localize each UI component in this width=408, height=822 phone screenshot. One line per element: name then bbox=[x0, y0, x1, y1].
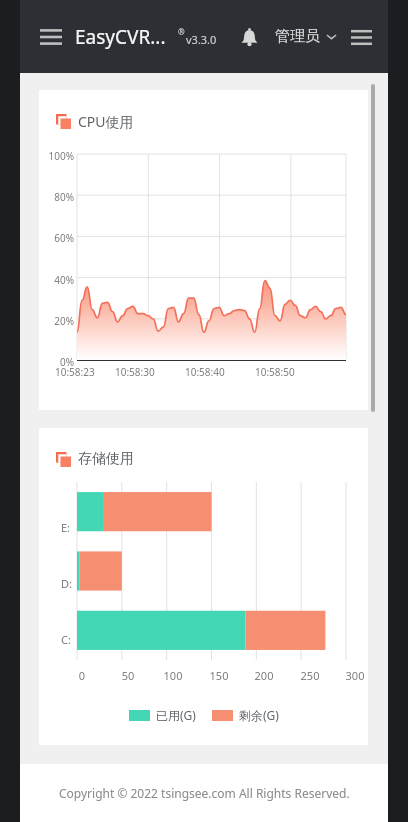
staticText: C: bbox=[61, 632, 71, 647]
staticText: 20% bbox=[40, 314, 74, 328]
staticText: ® bbox=[178, 26, 185, 37]
staticText: 剩余(G) bbox=[239, 707, 279, 723]
button[interactable]: CPU使用 bbox=[39, 90, 368, 410]
staticText: 300 bbox=[345, 668, 365, 683]
staticText: 150 bbox=[209, 668, 229, 683]
staticText: Copyright © 2022 tsingsee.com All Rights… bbox=[59, 785, 350, 801]
staticText: 10:58:50 bbox=[255, 365, 295, 379]
staticText: E: bbox=[61, 520, 71, 535]
staticText: 0 bbox=[72, 668, 92, 683]
staticText: 已用(G) bbox=[156, 707, 196, 723]
staticText: 100% bbox=[40, 149, 74, 163]
button[interactable]: 管理员 bbox=[275, 27, 337, 46]
staticText: v3.3.0 bbox=[186, 32, 217, 47]
button[interactable]: More options bbox=[347, 23, 375, 51]
staticText: CPU使用 bbox=[78, 112, 134, 131]
button[interactable]: Menu bbox=[36, 22, 66, 52]
button[interactable]: 存储使用 bbox=[39, 428, 368, 745]
staticText: 10:58:30 bbox=[115, 365, 155, 379]
staticText: 0% bbox=[40, 355, 74, 369]
button[interactable]: Notifications bbox=[233, 21, 265, 53]
staticText: 250 bbox=[300, 668, 320, 683]
staticText: 管理员 bbox=[275, 27, 320, 46]
staticText: EasyCVR... bbox=[75, 24, 166, 50]
staticText: 50 bbox=[118, 668, 138, 683]
staticText: 存储使用 bbox=[78, 450, 134, 468]
staticText: 40% bbox=[40, 273, 74, 287]
staticText: 10:58:23 bbox=[55, 365, 95, 379]
staticText: 60% bbox=[40, 231, 74, 245]
staticText: 80% bbox=[40, 190, 74, 204]
staticText: 10:58:40 bbox=[185, 365, 225, 379]
staticText: D: bbox=[61, 576, 72, 591]
staticText: 200 bbox=[254, 668, 274, 683]
staticText: 100 bbox=[163, 668, 183, 683]
